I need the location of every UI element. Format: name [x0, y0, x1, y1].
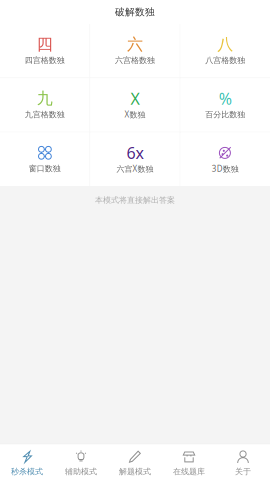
- staticText: 百分比数独: [205, 110, 245, 119]
- staticText: 八: [217, 34, 233, 54]
- button[interactable]: %: [180, 78, 270, 132]
- button[interactable]: 窗口数独: [0, 132, 90, 186]
- button[interactable]: 3D数独: [180, 132, 270, 186]
- staticText: 四: [37, 34, 53, 54]
- button[interactable]: 六: [90, 24, 180, 78]
- staticText: X数独: [124, 109, 145, 120]
- staticText: 本模式将直接解出答案: [95, 195, 175, 205]
- button[interactable]: 八: [180, 24, 270, 78]
- staticText: 窗口数独: [29, 164, 61, 174]
- staticText: 九宫格数独: [25, 110, 65, 119]
- staticText: 九: [37, 89, 53, 108]
- staticText: 六宫X数独: [116, 163, 153, 174]
- staticText: X: [130, 88, 139, 109]
- staticText: 秒杀模式: [11, 467, 43, 476]
- staticText: 6x: [126, 142, 143, 163]
- button[interactable]: 辅助模式: [54, 444, 108, 480]
- staticText: 在线题库: [173, 467, 205, 476]
- staticText: 解题模式: [119, 467, 151, 476]
- staticText: 六宫格数独: [115, 55, 155, 65]
- button[interactable]: 在线题库: [162, 444, 216, 480]
- button[interactable]: 6x: [90, 132, 180, 186]
- staticText: 辅助模式: [65, 467, 97, 476]
- button[interactable]: 九: [0, 78, 90, 132]
- staticText: 关于: [235, 467, 251, 476]
- button[interactable]: 秒杀模式: [0, 444, 54, 480]
- staticText: 破解数独: [115, 6, 155, 18]
- staticText: %: [219, 88, 232, 109]
- staticText: 四宫格数独: [25, 55, 65, 65]
- staticText: 3D数独: [212, 163, 239, 174]
- staticText: 六: [127, 34, 143, 54]
- button[interactable]: 四: [0, 24, 90, 78]
- button[interactable]: 关于: [216, 444, 270, 480]
- button[interactable]: 解题模式: [108, 444, 162, 480]
- button[interactable]: X: [90, 78, 180, 132]
- staticText: 八宫格数独: [205, 55, 245, 65]
